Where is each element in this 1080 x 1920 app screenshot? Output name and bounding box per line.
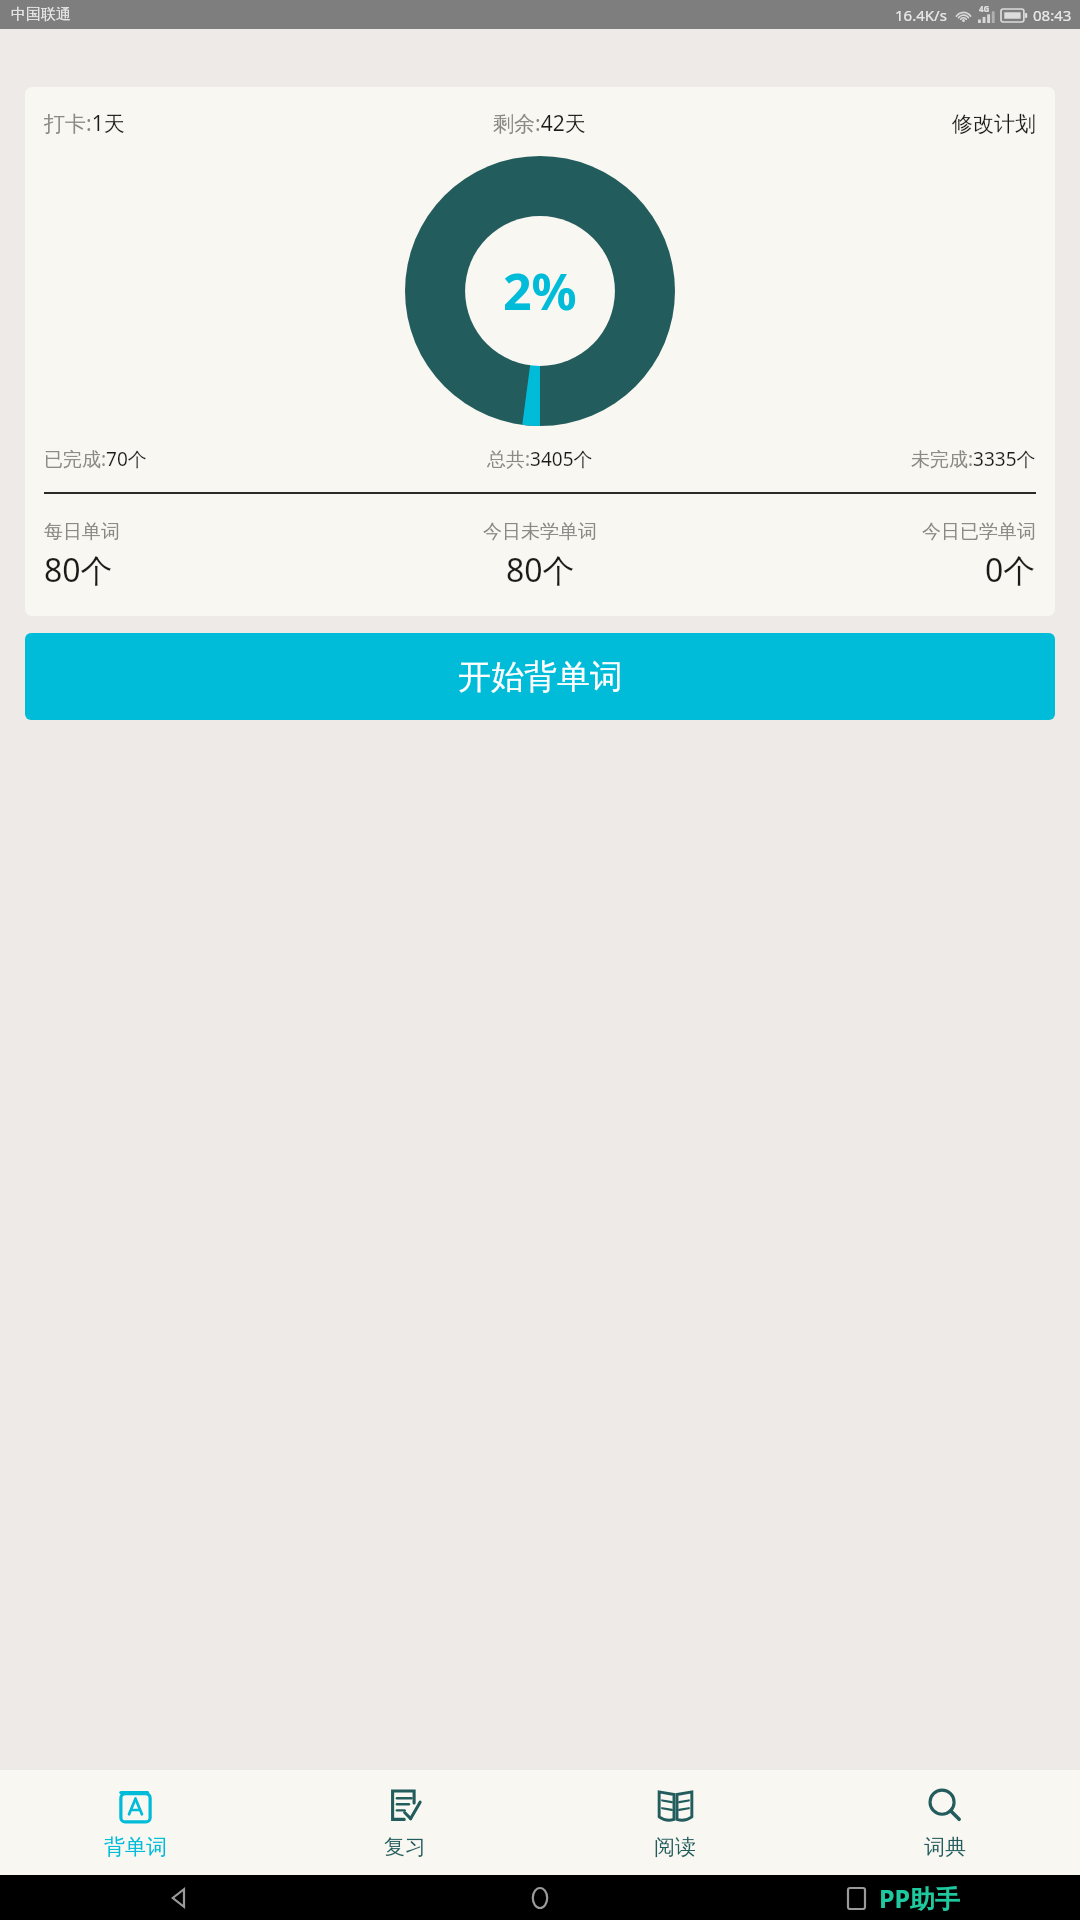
button[interactable]: 词典 [810, 1770, 1080, 1875]
staticText: PP助手 [879, 1881, 961, 1915]
button[interactable]: 开始背单词 [25, 633, 1055, 720]
staticText: 每日单词 [44, 520, 120, 544]
staticText: 复习 [384, 1834, 426, 1860]
button[interactable]: Back [163, 1881, 197, 1915]
staticText: 词典 [924, 1834, 966, 1860]
staticText: 中国联通 [11, 5, 71, 24]
button[interactable]: 复习 [270, 1770, 540, 1875]
staticText: 背单词 [104, 1834, 167, 1860]
staticText: 0个 [985, 548, 1036, 592]
staticText: 开始背单词 [458, 656, 623, 698]
staticText: 今日未学单词 [483, 520, 597, 544]
staticText: 阅读 [654, 1834, 696, 1860]
staticText: 4G [979, 3, 990, 14]
staticText: 今日已学单词 [922, 520, 1036, 544]
staticText: 08:43 [1033, 5, 1072, 25]
button[interactable]: 修改计划 [705, 111, 1036, 137]
staticText: 剩余:42天 [493, 109, 586, 138]
staticText: 80个 [44, 548, 113, 592]
button[interactable]: Recents [839, 1881, 873, 1915]
button[interactable]: Home [523, 1881, 557, 1915]
button[interactable]: 阅读 [540, 1770, 810, 1875]
staticText: 修改计划 [952, 111, 1036, 137]
staticText: 16.4K/s [895, 5, 947, 25]
button[interactable]: 背单词 [0, 1770, 270, 1875]
staticText: 已完成:70个 [44, 446, 147, 472]
staticText: 80个 [506, 548, 575, 592]
staticText: 总共:3405个 [487, 446, 593, 472]
staticText: 打卡:1天 [44, 109, 125, 138]
staticText: 未完成:3335个 [911, 446, 1036, 472]
staticText: 2% [503, 257, 577, 325]
